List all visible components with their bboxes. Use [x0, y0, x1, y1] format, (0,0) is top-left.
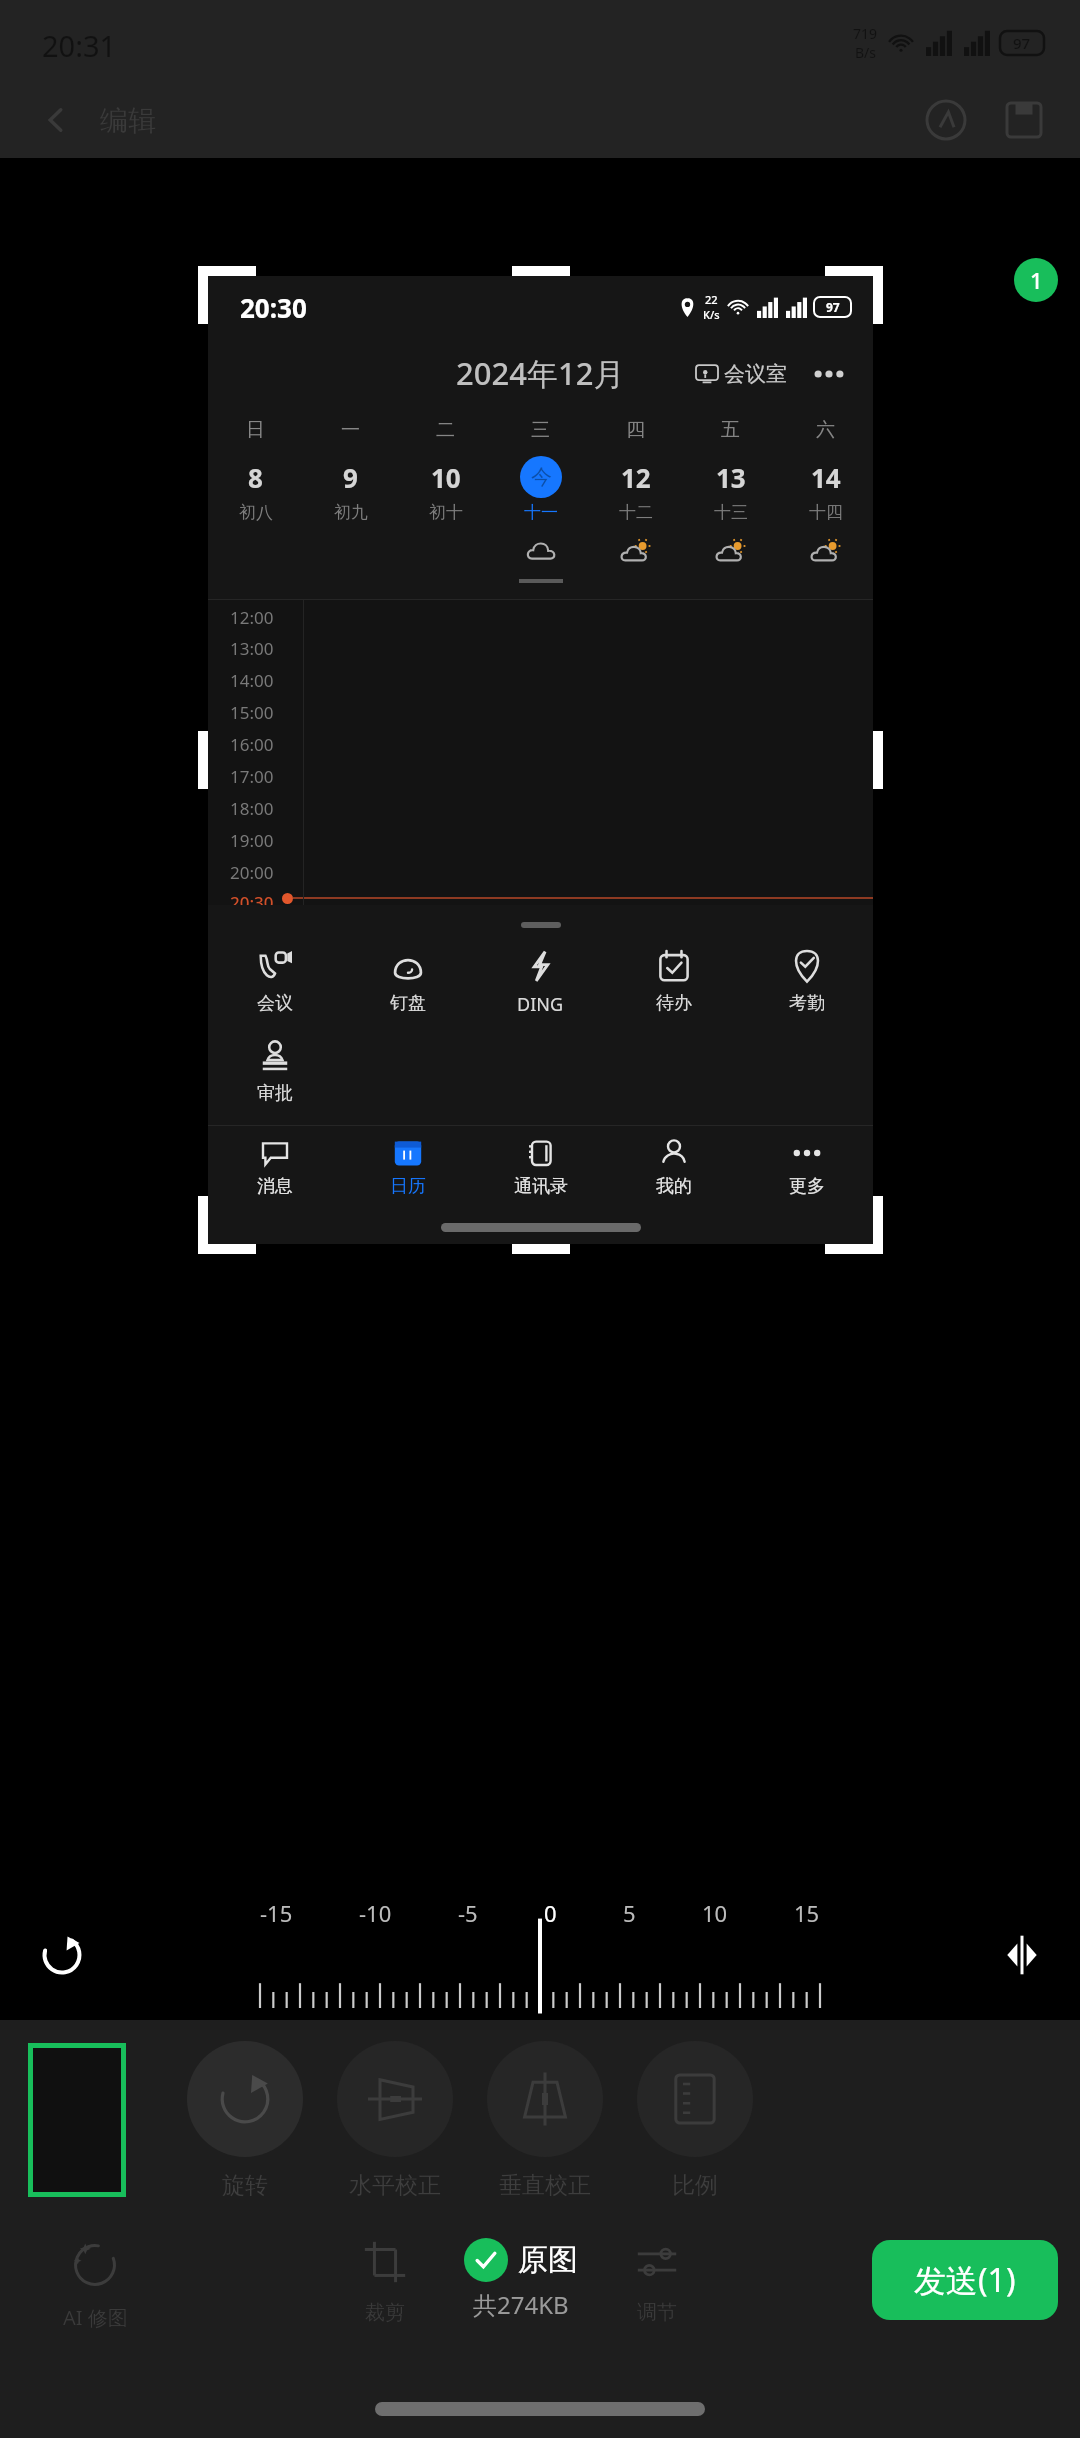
staticText: 97	[1013, 33, 1031, 53]
button[interactable]: 9	[303, 456, 398, 523]
button[interactable]: 旋转	[170, 2041, 320, 2200]
button[interactable]: DING	[474, 949, 607, 1017]
staticText: 通讯录	[514, 1175, 568, 1198]
button[interactable]: 10	[398, 456, 493, 523]
staticText: 裁剪	[365, 2300, 405, 2325]
button[interactable]: 12	[588, 456, 683, 523]
staticText: 水平校正	[349, 2171, 441, 2200]
staticText: 会议	[257, 992, 293, 1015]
staticText: 消息	[257, 1175, 293, 1198]
staticText: K/s	[703, 307, 720, 322]
staticText: 旋转	[222, 2171, 268, 2200]
staticText: 13	[716, 460, 746, 495]
button[interactable]: 钉盘	[341, 949, 474, 1015]
staticText: 十一	[524, 502, 558, 523]
staticText: 初八	[239, 502, 273, 523]
staticText: 编辑	[100, 103, 156, 138]
staticText: 十二	[619, 502, 653, 523]
staticText: 五	[721, 418, 740, 442]
staticText: 97	[826, 299, 840, 315]
staticText: 三	[531, 418, 550, 442]
button[interactable]: Mirror	[984, 1917, 1060, 1993]
staticText: 调节	[637, 2300, 677, 2325]
staticText: 20:31	[42, 26, 117, 65]
button[interactable]: 裁剪	[330, 2238, 440, 2325]
staticText: 10	[431, 460, 461, 495]
button[interactable]: 通讯录	[474, 1126, 607, 1210]
staticText: 12:00	[230, 606, 274, 629]
staticText: 原图	[518, 2241, 578, 2279]
staticText: 审批	[257, 1082, 293, 1105]
staticText: 5	[623, 1898, 636, 1928]
staticText: 考勤	[789, 992, 825, 1015]
button[interactable]: 日历	[341, 1126, 474, 1210]
button[interactable]: 14	[778, 456, 873, 523]
button[interactable]: AI 修图	[20, 2238, 170, 2331]
staticText: 日	[246, 418, 265, 442]
button[interactable]: 13	[683, 456, 778, 523]
staticText: 共274KB	[473, 2288, 569, 2321]
staticText: 更多	[789, 1175, 825, 1198]
button[interactable]: 水平校正	[320, 2041, 470, 2200]
staticText: 0	[544, 1898, 557, 1928]
staticText: 我的	[656, 1175, 692, 1198]
button[interactable]: 发送(1)	[872, 2240, 1058, 2320]
staticText: 今	[531, 464, 552, 490]
staticText: 会议室	[724, 361, 787, 387]
staticText: 一	[341, 418, 360, 442]
staticText: 20:30	[240, 290, 307, 325]
staticText: 22	[705, 292, 718, 307]
staticText: 719	[853, 24, 878, 43]
button[interactable]: 待办	[607, 949, 740, 1015]
staticText: 9	[343, 460, 358, 495]
button[interactable]: 更多	[740, 1126, 873, 1210]
staticText: -5	[458, 1898, 478, 1928]
staticText: 14:00	[230, 669, 274, 692]
staticText: 14	[811, 460, 841, 495]
staticText: 二	[436, 418, 455, 442]
button[interactable]: 比例	[620, 2041, 770, 2200]
staticText: 比例	[672, 2171, 718, 2200]
button[interactable]: 会议	[208, 949, 341, 1015]
button[interactable]: Rotate	[24, 1917, 100, 1993]
staticText: -15	[260, 1898, 293, 1928]
staticText: 日历	[390, 1175, 426, 1198]
staticText: 15	[794, 1898, 820, 1928]
staticText: 六	[816, 418, 835, 442]
staticText: B/s	[855, 43, 877, 62]
staticText: 18:00	[230, 797, 274, 820]
staticText: 19:00	[230, 829, 274, 852]
button[interactable]: 调节	[602, 2238, 712, 2325]
staticText: 待办	[656, 992, 692, 1015]
staticText: 15:00	[230, 701, 274, 724]
staticText: 8	[248, 460, 263, 495]
button[interactable]: 1	[1014, 258, 1058, 302]
button[interactable]: 考勤	[740, 949, 873, 1015]
staticText: 2024年12月	[456, 352, 625, 394]
button[interactable]: Markup	[918, 92, 974, 148]
staticText: 1	[1030, 265, 1043, 295]
button[interactable]: 今	[493, 456, 588, 523]
staticText: 13:00	[230, 637, 274, 660]
button[interactable]: 垂直校正	[470, 2041, 620, 2200]
button[interactable]: 我的	[607, 1126, 740, 1210]
staticText: 垂直校正	[499, 2171, 591, 2200]
button[interactable]: 消息	[208, 1126, 341, 1210]
staticText: 四	[626, 418, 645, 442]
button[interactable]: 审批	[208, 1039, 341, 1105]
button[interactable]: Save	[996, 92, 1052, 148]
staticText: -10	[359, 1898, 392, 1928]
staticText: 十三	[714, 502, 748, 523]
staticText: 10	[702, 1898, 728, 1928]
staticText: 初九	[334, 502, 368, 523]
staticText: 发送(1)	[914, 2258, 1016, 2302]
button[interactable]: More options	[807, 352, 851, 396]
button[interactable]: 原图	[446, 2238, 596, 2321]
button[interactable]: 会议室	[696, 361, 787, 387]
staticText: 初十	[429, 502, 463, 523]
button[interactable]: Back	[28, 92, 84, 148]
staticText: 20:00	[230, 861, 274, 884]
button[interactable]: 8	[208, 456, 303, 523]
staticText: AI 修图	[63, 2304, 128, 2331]
button[interactable]	[28, 2043, 126, 2197]
